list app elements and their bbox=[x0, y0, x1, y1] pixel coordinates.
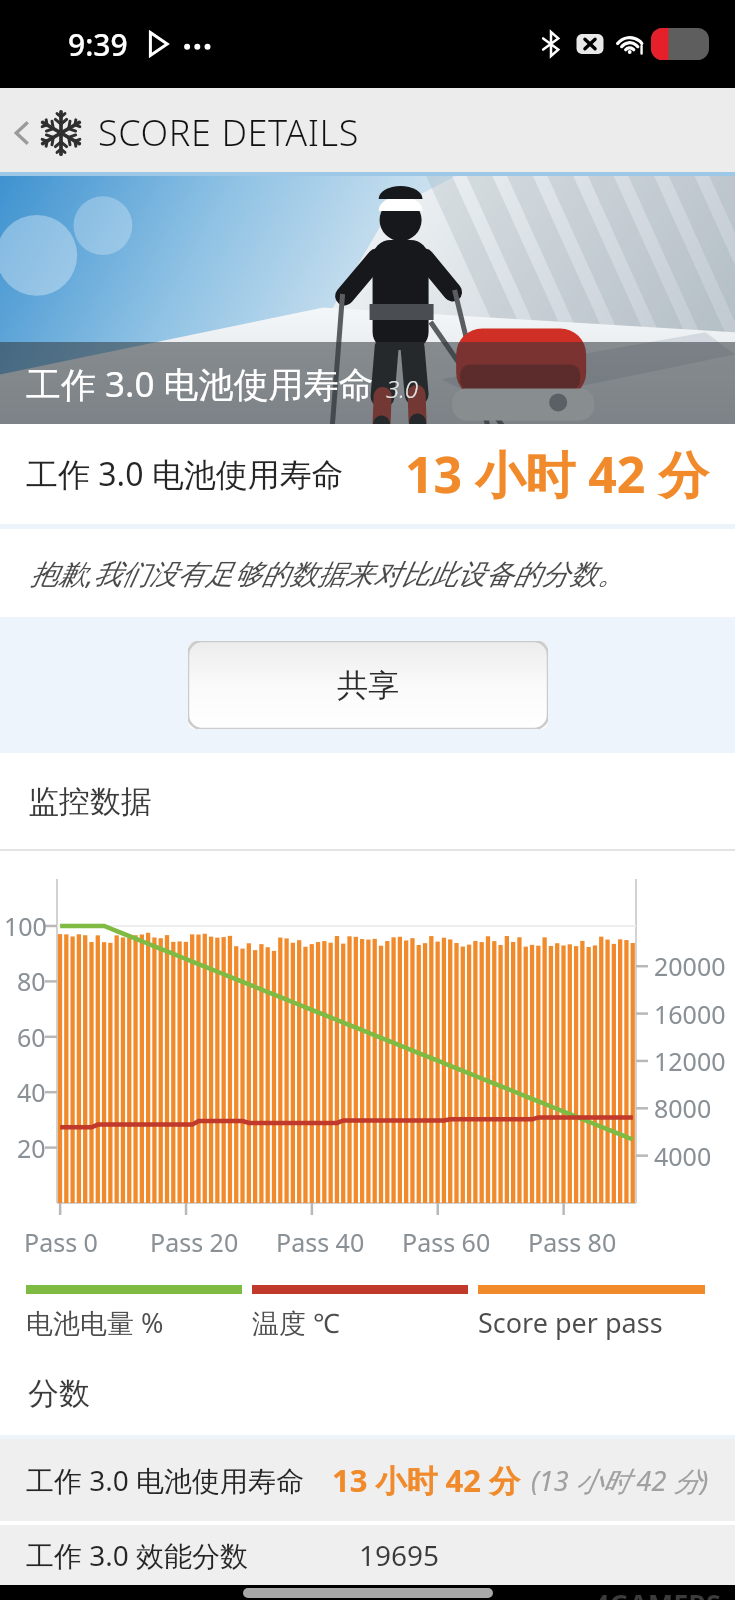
staticText: 13 小时 42 分 bbox=[405, 440, 709, 508]
staticText: 16000 bbox=[654, 997, 726, 1031]
staticText: Pass 80 bbox=[528, 1225, 617, 1259]
staticText: Score per pass bbox=[478, 1304, 663, 1341]
button[interactable]: 工作 3.0 效能分数 bbox=[0, 1525, 735, 1585]
staticText: 工作 3.0 效能分数 bbox=[26, 1536, 249, 1574]
staticText: 工作 3.0 电池使用寿命 bbox=[26, 1461, 305, 1499]
staticText: 抱歉,我们没有足够的数据来对比此设备的分数。 bbox=[30, 554, 626, 592]
staticText: Pass 60 bbox=[402, 1225, 491, 1259]
staticText: Pass 40 bbox=[276, 1225, 365, 1259]
button[interactable]: Back to scores bbox=[0, 98, 379, 167]
staticText: 80 bbox=[17, 964, 46, 998]
staticText: 监控数据 bbox=[28, 782, 152, 821]
staticText: 19695 bbox=[359, 1536, 440, 1574]
staticText: 4GAMERS bbox=[594, 1585, 721, 1600]
staticText: 20 bbox=[17, 1131, 46, 1165]
button[interactable]: 共享 bbox=[188, 641, 548, 729]
staticText: 4000 bbox=[654, 1139, 712, 1173]
staticText: 分数 bbox=[28, 1374, 90, 1413]
staticText: (13 小时 42 分) bbox=[531, 1462, 709, 1499]
button[interactable]: 工作 3.0 电池使用寿命 bbox=[0, 1439, 735, 1521]
staticText: 电池电量 % bbox=[26, 1304, 164, 1341]
staticText: 8000 bbox=[654, 1091, 712, 1125]
staticText: 100 bbox=[4, 909, 47, 943]
staticText: Pass 20 bbox=[150, 1225, 239, 1259]
staticText: SCORE DETAILS bbox=[98, 108, 359, 157]
staticText: 13 小时 42 分 bbox=[332, 1459, 521, 1501]
staticText: 共享 bbox=[337, 666, 399, 705]
staticText: Pass 0 bbox=[24, 1225, 98, 1259]
staticText: 9:39 bbox=[68, 24, 128, 65]
staticText: 温度 ℃ bbox=[252, 1304, 340, 1341]
staticText: 20000 bbox=[654, 949, 726, 983]
staticText: 工作 3.0 电池使用寿命 bbox=[26, 452, 344, 496]
staticText: 3.0 bbox=[386, 372, 418, 405]
staticText: 40 bbox=[17, 1075, 46, 1109]
staticText: 12000 bbox=[654, 1044, 726, 1078]
staticText: 60 bbox=[17, 1020, 46, 1054]
staticText: 工作 3.0 电池使用寿命 bbox=[26, 360, 374, 408]
